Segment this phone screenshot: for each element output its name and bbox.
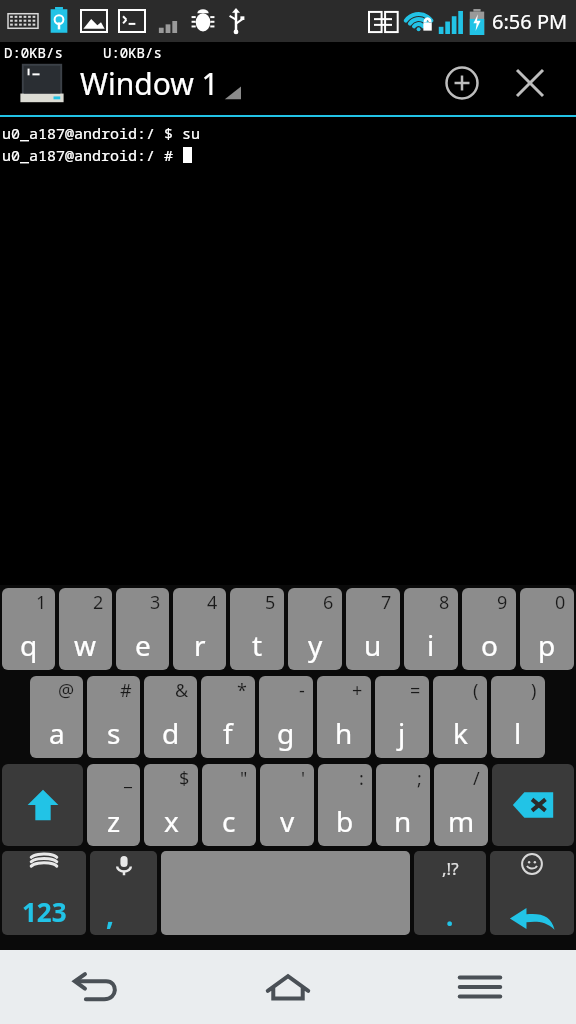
staticText: + (352, 678, 363, 703)
button[interactable]: Home (192, 950, 384, 1024)
button[interactable]: + (317, 676, 371, 758)
staticText: o (481, 626, 498, 664)
staticText: 1 (36, 590, 47, 615)
button[interactable]: # (87, 676, 140, 758)
button[interactable]: New window (438, 59, 486, 107)
staticText: p (538, 626, 556, 664)
staticText: s (107, 714, 121, 752)
staticText: i (427, 626, 435, 664)
staticText: 4 (207, 590, 218, 615)
button[interactable]: 4 (173, 588, 226, 670)
button[interactable]: * (201, 676, 255, 758)
staticText: = (410, 678, 421, 703)
button[interactable]: Close window (506, 59, 554, 107)
staticText: q (20, 626, 38, 664)
staticText: ; (417, 766, 422, 791)
button[interactable]: $ (144, 764, 198, 846)
button[interactable]: - (259, 676, 313, 758)
staticText: " (240, 766, 248, 791)
staticText: t (252, 626, 263, 664)
button[interactable]: u0_a187@android:/ $ su (0, 117, 576, 585)
staticText: 3 (150, 590, 161, 615)
button[interactable]: = (375, 676, 429, 758)
staticText: b (336, 802, 354, 840)
staticText: d (162, 714, 180, 752)
button[interactable]: " (202, 764, 256, 846)
button[interactable]: _ (87, 764, 140, 846)
staticText: # (120, 678, 132, 703)
button[interactable]: / (434, 764, 488, 846)
button[interactable]: ( (433, 676, 487, 758)
staticText: c (222, 802, 236, 840)
staticText: ) (531, 678, 537, 703)
staticText: Window 1 (80, 63, 219, 104)
staticText: l (514, 714, 522, 752)
button[interactable]: ) (491, 676, 545, 758)
staticText: g (277, 714, 295, 752)
button[interactable]: 0 (520, 588, 574, 670)
button[interactable]: & (144, 676, 197, 758)
staticText: 6:56 PM (492, 8, 568, 35)
staticText: k (453, 714, 468, 752)
button[interactable]: 9 (462, 588, 516, 670)
button[interactable]: 1 (2, 588, 55, 670)
staticText: u (364, 626, 382, 664)
button[interactable]: Voice input (90, 851, 157, 935)
button[interactable]: ; (376, 764, 430, 846)
staticText: r (194, 626, 206, 664)
button[interactable]: Symbols 123 (2, 851, 86, 935)
staticText: * (237, 678, 247, 703)
staticText: m (448, 802, 475, 840)
button[interactable]: Space (161, 851, 410, 935)
staticText: . (446, 898, 454, 933)
staticText: f (223, 714, 233, 752)
staticText: 0 (555, 590, 566, 615)
staticText: y (308, 626, 323, 664)
staticText: $ (179, 766, 190, 791)
staticText: u0_a187@android:/ $ su (2, 123, 201, 143)
staticText: & (175, 678, 189, 703)
staticText: 8 (439, 590, 450, 615)
button[interactable]: 7 (346, 588, 400, 670)
staticText: u0_a187@android:/ # (2, 145, 183, 165)
button[interactable]: Back (0, 950, 192, 1024)
button[interactable]: @ (30, 676, 83, 758)
staticText: j (398, 714, 406, 752)
staticText: n (394, 802, 412, 840)
button[interactable]: 6 (288, 588, 342, 670)
button[interactable]: Shift (2, 764, 83, 846)
staticText: 7 (381, 590, 392, 615)
button[interactable]: Enter (490, 851, 574, 935)
button[interactable]: Backspace (492, 764, 574, 846)
staticText: z (107, 802, 121, 840)
staticText: ' (301, 766, 306, 791)
staticText: e (135, 626, 151, 664)
staticText: 5 (265, 590, 276, 615)
staticText: 9 (497, 590, 508, 615)
staticText: : (359, 766, 364, 791)
staticText: 123 (22, 894, 67, 929)
staticText: h (335, 714, 353, 752)
staticText: ( (473, 678, 479, 703)
button[interactable]: 8 (404, 588, 458, 670)
staticText: 6 (323, 590, 334, 615)
button[interactable]: 2 (59, 588, 112, 670)
staticText: w (74, 626, 97, 664)
staticText: v (280, 802, 295, 840)
staticText: a (49, 714, 65, 752)
button[interactable]: : (318, 764, 372, 846)
staticText: ,!? (442, 857, 459, 880)
staticText: D:0KB/s (4, 43, 63, 62)
staticText: _ (124, 766, 132, 791)
button[interactable]: 5 (230, 588, 284, 670)
staticText: 2 (93, 590, 104, 615)
button[interactable]: ,!? (414, 851, 486, 935)
button[interactable]: Menu (384, 950, 576, 1024)
button[interactable]: 3 (116, 588, 169, 670)
staticText: x (164, 802, 179, 840)
button[interactable]: ' (260, 764, 314, 846)
staticText: , (106, 895, 114, 933)
staticText: @ (58, 678, 75, 703)
staticText: U:0KB/s (103, 43, 162, 62)
staticText: - (299, 678, 305, 703)
